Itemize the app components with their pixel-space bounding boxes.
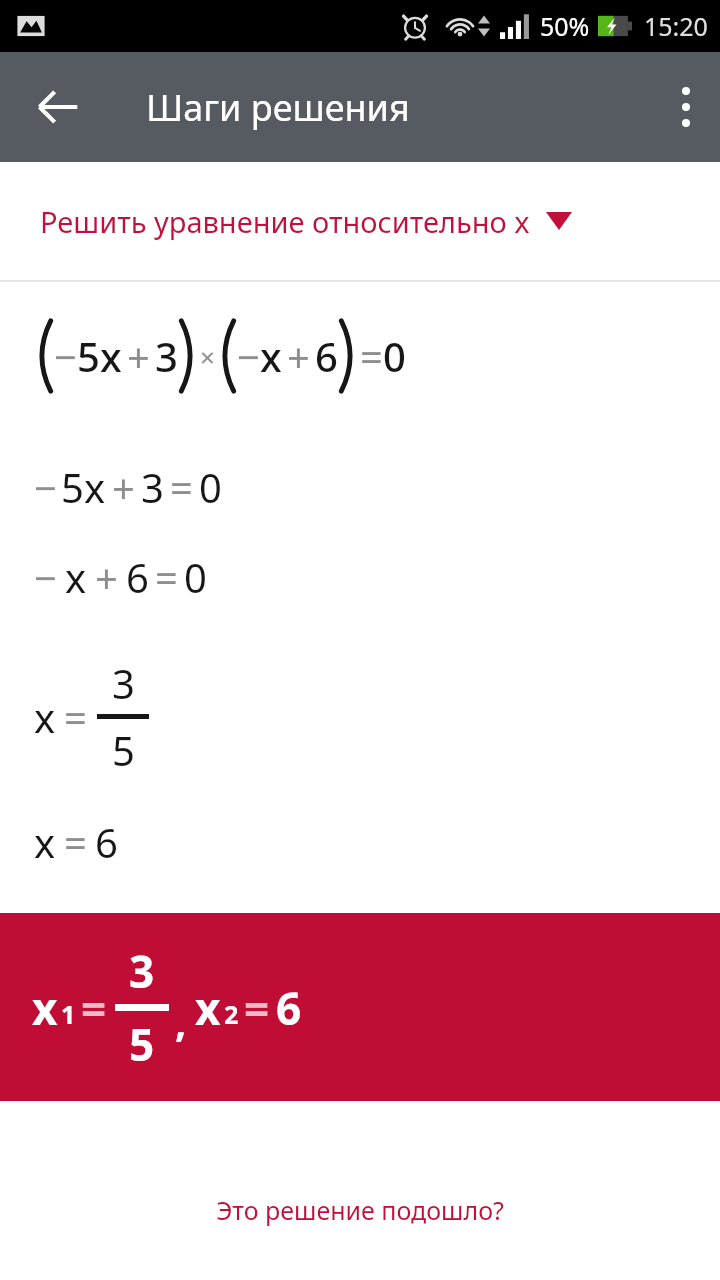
staticText: +: [112, 460, 135, 514]
staticText: 5x: [61, 460, 106, 514]
button[interactable]: More options: [652, 52, 720, 162]
button[interactable]: x: [0, 913, 720, 1101]
staticText: 3: [141, 460, 164, 514]
staticText: +: [287, 329, 310, 383]
button[interactable]: Это решение подошло?: [0, 1189, 720, 1231]
staticText: 3: [112, 656, 135, 710]
staticText: −: [34, 550, 57, 604]
staticText: ×: [200, 339, 215, 374]
staticText: x: [65, 550, 87, 604]
staticText: =: [155, 550, 178, 604]
staticText: 6: [126, 550, 149, 604]
button[interactable]: Back: [22, 71, 94, 143]
staticText: =: [360, 329, 383, 383]
staticText: 0: [383, 329, 406, 383]
staticText: =: [170, 460, 193, 514]
staticText: =: [244, 978, 270, 1038]
staticText: ,: [175, 994, 187, 1048]
staticText: 5: [112, 723, 135, 777]
staticText: =: [64, 815, 87, 869]
staticText: −: [237, 329, 260, 383]
staticText: =: [81, 978, 107, 1038]
staticText: −: [54, 329, 77, 383]
staticText: 5x: [77, 329, 122, 383]
staticText: 2: [224, 997, 239, 1031]
staticText: −: [34, 460, 57, 514]
staticText: +: [127, 329, 150, 383]
staticText: 50%: [540, 9, 590, 43]
staticText: Решить уравнение относительно x: [40, 202, 530, 241]
staticText: x: [195, 978, 221, 1038]
staticText: x: [32, 978, 58, 1038]
staticText: 6: [276, 978, 302, 1038]
staticText: 0: [199, 460, 222, 514]
staticText: 6: [95, 815, 118, 869]
staticText: 3: [129, 941, 155, 1001]
button[interactable]: Решить уравнение относительно x: [0, 162, 720, 280]
staticText: x: [34, 815, 56, 869]
staticText: 15:20: [644, 9, 708, 43]
staticText: =: [64, 690, 87, 744]
staticText: 3: [155, 329, 178, 383]
staticText: 0: [184, 550, 207, 604]
staticText: Шаги решения: [146, 83, 410, 132]
staticText: 6: [315, 329, 338, 383]
staticText: x: [260, 329, 282, 383]
staticText: x: [34, 690, 56, 744]
staticText: 5: [129, 1014, 155, 1074]
staticText: 1: [61, 997, 76, 1031]
staticText: +: [95, 550, 118, 604]
